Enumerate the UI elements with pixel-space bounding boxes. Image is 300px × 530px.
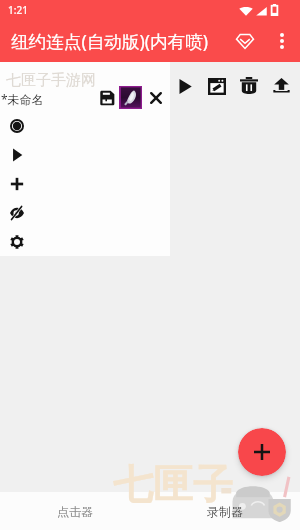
button[interactable]: Play: [169, 71, 201, 101]
staticText: 七匣子手游网: [6, 71, 96, 90]
staticText: 点击器: [57, 504, 93, 519]
button[interactable]: Edit window: [201, 71, 233, 101]
staticText: 纽约连点(自动版)(内有喷): [11, 29, 209, 53]
button[interactable]: Add: [6, 173, 27, 194]
button[interactable]: App icon: [119, 86, 142, 109]
button[interactable]: More options: [264, 22, 300, 60]
button[interactable]: 录制器: [150, 492, 300, 530]
button[interactable]: Hide: [6, 202, 27, 223]
button[interactable]: Settings: [6, 231, 27, 252]
button[interactable]: VIP: [226, 22, 264, 60]
staticText: *未命名: [1, 91, 44, 107]
button[interactable]: Save: [97, 88, 117, 108]
staticText: 七匣子: [113, 459, 233, 509]
button[interactable]: Delete: [233, 71, 265, 101]
button[interactable]: 点击器: [0, 492, 150, 530]
staticText: 录制器: [207, 504, 243, 519]
button[interactable]: Play: [6, 144, 27, 165]
button[interactable]: Close: [147, 89, 165, 107]
button[interactable]: Add: [238, 428, 286, 476]
button[interactable]: Record: [6, 115, 27, 136]
button[interactable]: Upload: [265, 71, 297, 101]
staticText: 1:21: [8, 3, 28, 17]
